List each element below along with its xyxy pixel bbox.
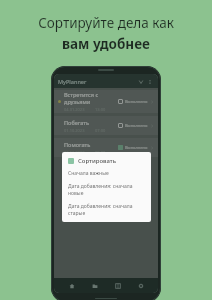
staticText: 09:00 xyxy=(95,150,106,155)
staticText: Помогать xyxy=(64,141,91,148)
staticText: Сначала важные xyxy=(68,170,109,177)
button[interactable]: Выполнено xyxy=(118,123,148,128)
staticText: Встретится с друзьями xyxy=(64,91,99,105)
button[interactable]: Home xyxy=(66,280,77,291)
button[interactable]: Дата добавления: сначала новые xyxy=(68,183,145,197)
button[interactable]: More options xyxy=(145,77,154,86)
staticText: Дата добавления: сначала старые xyxy=(68,203,145,217)
staticText: 01.10.2023 xyxy=(64,128,85,133)
staticText: 07:00 xyxy=(95,128,106,133)
staticText: Выполнено xyxy=(125,123,148,128)
staticText: Выполнено xyxy=(125,145,148,150)
staticText: вам удобнее xyxy=(62,35,150,53)
button[interactable]: Sort xyxy=(136,77,145,86)
staticText: 04.01.2023 xyxy=(64,107,85,112)
staticText: 12.11.2023 xyxy=(64,150,85,155)
button[interactable]: Settings xyxy=(135,280,146,291)
staticText: Побегать xyxy=(64,119,90,126)
button[interactable]: Grid xyxy=(112,280,123,291)
staticText: Выполнено xyxy=(125,99,148,104)
button[interactable]: Выполнено xyxy=(118,99,148,104)
button[interactable]: Сначала важные xyxy=(68,170,145,177)
button[interactable]: Дата добавления: сначала старые xyxy=(68,203,145,217)
button[interactable]: Folders xyxy=(89,280,100,291)
staticText: Дата добавления: сначала новые xyxy=(68,183,145,197)
staticText: Сортируйте дела как xyxy=(38,14,174,32)
staticText: 13:00 xyxy=(95,107,106,112)
button[interactable]: Встретится с друзьями xyxy=(54,90,158,113)
button[interactable]: Помогать xyxy=(54,138,158,157)
staticText: MyPlanner xyxy=(58,78,87,85)
button[interactable]: Побегать xyxy=(54,116,158,135)
staticText: Сортировать xyxy=(78,157,117,165)
button[interactable]: Выполнено xyxy=(118,145,148,150)
